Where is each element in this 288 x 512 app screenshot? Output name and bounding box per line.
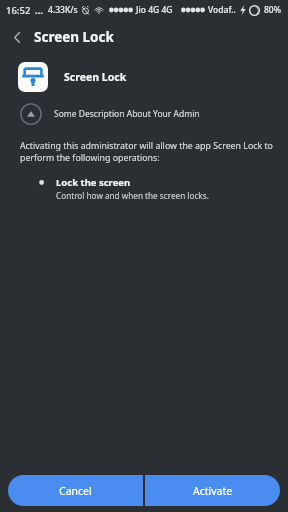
staticText: Activate bbox=[193, 484, 233, 498]
staticText: 4.33K/s bbox=[48, 4, 78, 16]
button[interactable]: Back bbox=[0, 20, 34, 54]
staticText: Cancel bbox=[59, 484, 92, 498]
staticText: 16:52 bbox=[6, 4, 31, 17]
staticText: 80% bbox=[264, 4, 281, 16]
staticText: Vodaf.. bbox=[208, 4, 236, 16]
staticText: Some Description About Your Admin bbox=[54, 108, 200, 120]
button[interactable]: Activate bbox=[145, 475, 280, 506]
staticText: Jio 4G 4G bbox=[136, 4, 173, 16]
staticText: Control how and when the screen locks. bbox=[56, 190, 209, 201]
button[interactable]: Some Description About Your Admin bbox=[0, 100, 288, 128]
button[interactable]: Cancel bbox=[8, 475, 143, 506]
staticText: Screen Lock bbox=[34, 28, 114, 46]
staticText: Activating this administrator will allow… bbox=[20, 140, 274, 164]
staticText: Lock the screen bbox=[56, 176, 131, 189]
staticText: Screen Lock bbox=[64, 70, 127, 84]
staticText: ... bbox=[35, 4, 44, 17]
